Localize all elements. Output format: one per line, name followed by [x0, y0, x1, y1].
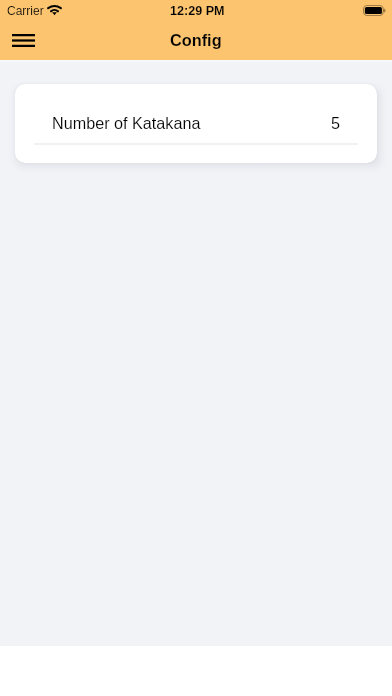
button[interactable]: Menu [6, 23, 40, 57]
staticText: Carrier [7, 4, 44, 17]
staticText: Number of Katakana [52, 114, 201, 132]
staticText: 5 [331, 114, 341, 132]
staticText: 12:29 PM [170, 4, 225, 18]
staticText: Config [170, 31, 222, 49]
button[interactable]: Number of Katakana [15, 84, 377, 145]
